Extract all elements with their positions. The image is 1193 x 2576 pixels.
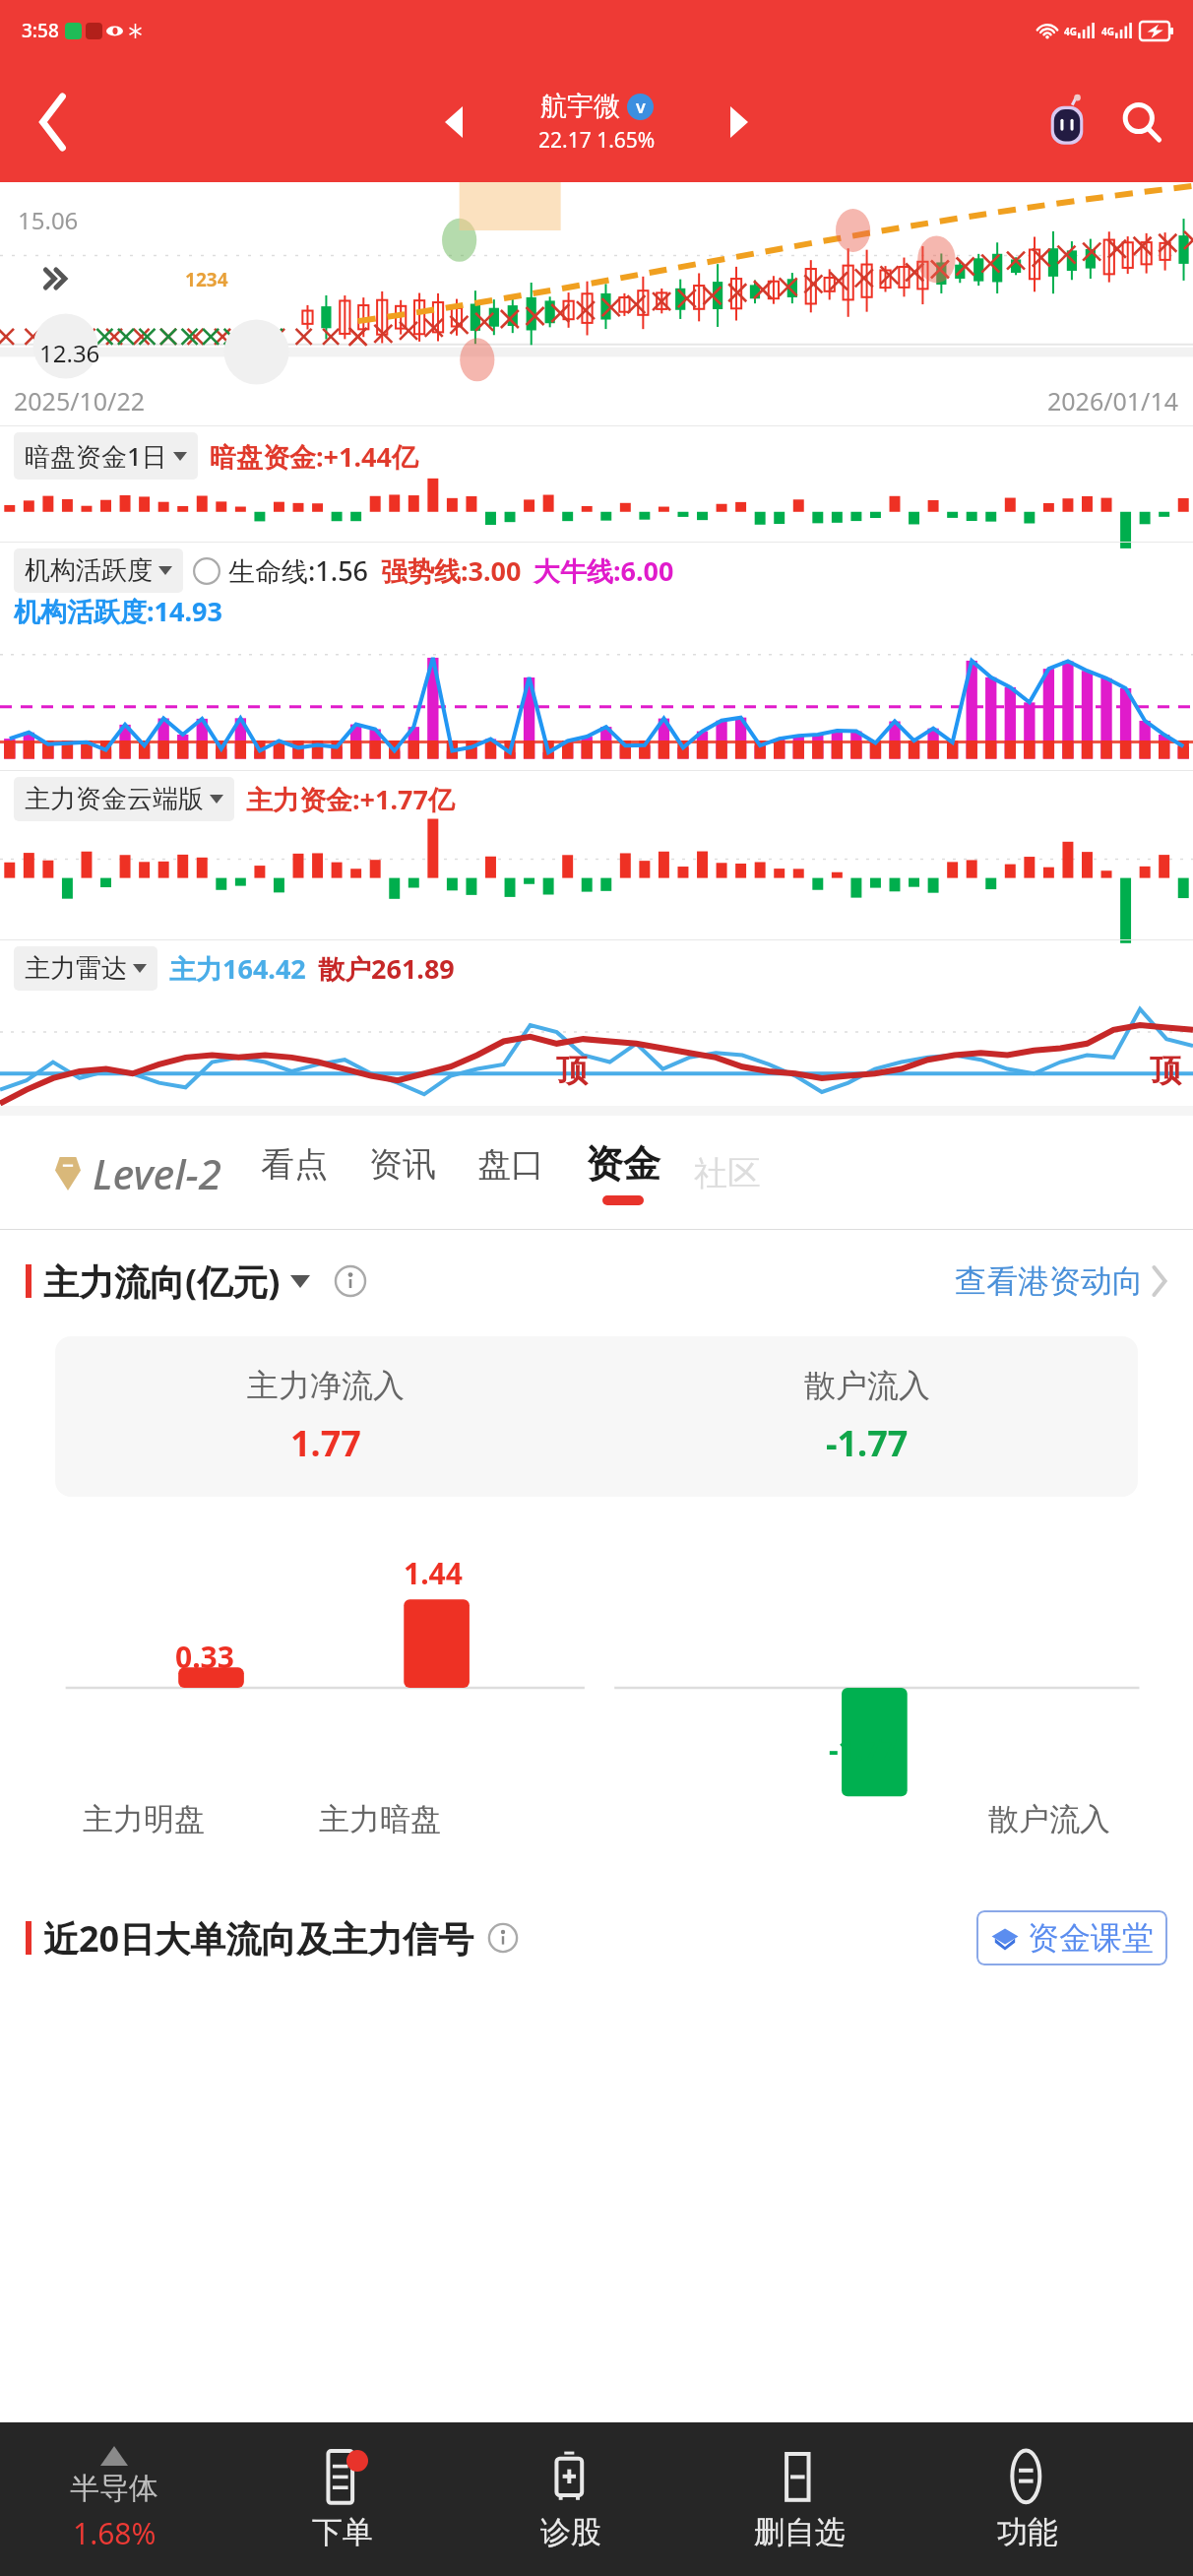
staticText: 主力明盘 [26,1800,262,1838]
button[interactable]: 主力净流入 [55,1336,1138,1497]
staticText: 主力资金云端版 [25,783,204,815]
staticText: 0.33 [175,1637,234,1677]
button[interactable]: 主力雷达 [14,946,157,991]
staticText: 主力暗盘 [262,1800,498,1838]
button[interactable]: 资金课堂 [976,1910,1167,1965]
button[interactable]: Expand chart [28,251,83,306]
staticText: 主力资金:+1.77亿 [246,781,455,817]
staticText: 生命线:1.56 [228,552,369,589]
staticText: 15.06 [18,204,79,236]
staticText: 1 [185,267,196,292]
staticText: 主力164.42 [169,950,306,987]
button[interactable]: AI assistant [1030,85,1104,160]
staticText: 近20日大单流向及主力信号 [43,1914,474,1963]
staticText: 234 [196,267,228,292]
staticText: V [636,97,646,117]
staticText: 顶 [556,1051,588,1090]
button[interactable]: 社区 [694,1152,761,1194]
staticText: 资金课堂 [1028,1918,1154,1958]
button[interactable]: 下单 [228,2448,457,2551]
staticText: 暗盘资金:+1.44亿 [210,438,418,475]
staticText: 主力雷达 [25,952,127,985]
button[interactable]: 主力流向(亿元) [43,1257,310,1306]
staticText: 删自选 [754,2513,846,2551]
staticText: 顶 [1150,1051,1181,1090]
button[interactable]: Back [0,61,108,182]
staticText: 22.17 1.65% [538,126,656,155]
staticText: 半导体 [70,2470,158,2507]
staticText: 机构活跃度 [25,554,153,587]
staticText: 1.44 [404,1553,463,1593]
staticText: 下单 [312,2513,373,2551]
button[interactable]: 主力资金云端版 [14,777,234,821]
staticText: 资金 [586,1140,660,1188]
button[interactable]: 机构活跃度 [14,548,183,593]
staticText: 强势线:3.00 [381,552,522,589]
staticText: 4G [1101,25,1114,38]
button[interactable]: Search [1104,85,1179,160]
staticText: 4G [1064,25,1077,38]
staticText: 看点 [261,1143,328,1186]
button[interactable]: 查看港资动向 [955,1261,1167,1301]
button[interactable]: 半导体 [0,2446,228,2553]
button[interactable]: 诊股 [457,2448,685,2551]
button[interactable]: 资金 [584,1140,662,1205]
button[interactable]: 功能 [913,2448,1142,2551]
button[interactable]: 暗盘资金1日 [14,432,198,480]
staticText: 2025/10/22 [14,384,146,418]
staticText: 2026/01/14 [1047,384,1179,418]
staticText: 暗盘资金1日 [25,438,167,474]
staticText: 机构活跃度:14.93 [14,593,222,629]
button[interactable]: 盘口 [475,1143,546,1203]
button[interactable]: Next stock [710,93,769,152]
button[interactable]: Info [332,1262,369,1300]
staticText: 散户流入 [931,1800,1167,1838]
staticText: 主力净流入 [247,1366,405,1405]
staticText: 12.36 [39,337,100,369]
staticText: -1.77 [826,1419,909,1467]
staticText: 散户流入 [804,1366,930,1405]
staticText: 主力流向(亿元) [43,1257,281,1306]
staticText: 1.68% [73,2513,157,2553]
button[interactable]: Previous stock [424,93,483,152]
staticText: 盘口 [477,1143,544,1186]
staticText: 散户261.89 [318,950,455,987]
button[interactable]: 删自选 [685,2448,913,2551]
staticText: 大牛线:6.00 [534,552,674,589]
staticText: 资讯 [369,1143,436,1186]
button[interactable]: Level-2 [55,1145,221,1201]
staticText: Level-2 [93,1145,221,1201]
button[interactable]: 看点 [259,1143,330,1203]
staticText: 航宇微 [540,90,620,123]
staticText: 查看港资动向 [955,1261,1144,1301]
staticText: 3:58 [22,18,59,43]
staticText: 功能 [997,2513,1058,2551]
staticText: 诊股 [540,2513,601,2551]
staticText: -1.77 [829,1729,898,1770]
button[interactable]: 资讯 [367,1143,438,1203]
staticText: 1.77 [290,1419,361,1467]
